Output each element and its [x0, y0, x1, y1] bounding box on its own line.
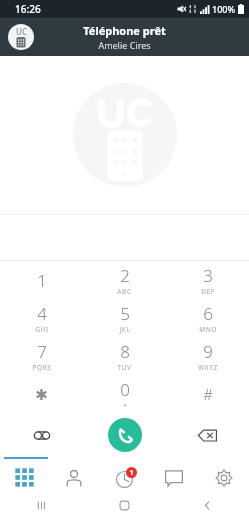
button[interactable]: 2 [83, 261, 166, 299]
staticText: 1 [129, 468, 134, 478]
staticText: UC [16, 26, 27, 37]
staticText: 0 [120, 378, 130, 401]
button[interactable]: Back [166, 498, 249, 512]
staticText: 3 [203, 264, 213, 287]
staticText: 5 [120, 302, 130, 325]
button[interactable]: ✱ [0, 375, 83, 413]
staticText: 1 [37, 269, 47, 292]
button[interactable]: History [99, 457, 149, 498]
staticText: 7 [37, 340, 47, 363]
button[interactable]: 5 [83, 299, 166, 337]
button[interactable]: Settings [199, 457, 249, 498]
staticText: 9 [203, 340, 213, 363]
staticText: 100% [212, 3, 236, 15]
staticText: TUV [117, 363, 132, 372]
button[interactable]: 9 [166, 337, 249, 375]
button[interactable]: 1 [0, 261, 83, 299]
staticText: 8 [120, 340, 130, 363]
button[interactable]: Backspace [166, 413, 249, 457]
button[interactable]: 7 [0, 337, 83, 375]
staticText: WXYZ [198, 363, 218, 372]
staticText: ✱ [35, 386, 48, 403]
button[interactable]: Call [108, 418, 142, 452]
staticText: MNO [199, 325, 217, 334]
staticText: DEF [201, 287, 215, 296]
staticText: ABC [117, 287, 132, 296]
staticText: GHI [35, 325, 49, 334]
button[interactable]: Voicemail [0, 413, 83, 457]
staticText: 6 [203, 302, 213, 325]
button[interactable]: 8 [83, 337, 166, 375]
button[interactable]: 6 [166, 299, 249, 337]
staticText: + [123, 401, 128, 410]
button[interactable]: 4 [0, 299, 83, 337]
button[interactable]: 0 [83, 375, 166, 413]
button[interactable]: Home [83, 498, 166, 512]
button[interactable]: Recents [0, 498, 83, 512]
button[interactable]: # [166, 375, 249, 413]
staticText: 2 [120, 264, 130, 287]
staticText: JKL [119, 325, 131, 334]
staticText: Amelie Cires [98, 39, 151, 51]
staticText: 16:26 [15, 2, 41, 16]
button[interactable]: Messages [149, 457, 199, 498]
button[interactable]: Profile [6, 22, 36, 52]
button[interactable]: Contacts [49, 457, 99, 498]
staticText: Téléphone prêt [83, 23, 166, 38]
staticText: PQRS [32, 363, 52, 372]
staticText: # [203, 384, 213, 404]
staticText: 4 [37, 302, 47, 325]
button[interactable]: 3 [166, 261, 249, 299]
button[interactable]: Dialpad [0, 457, 49, 498]
